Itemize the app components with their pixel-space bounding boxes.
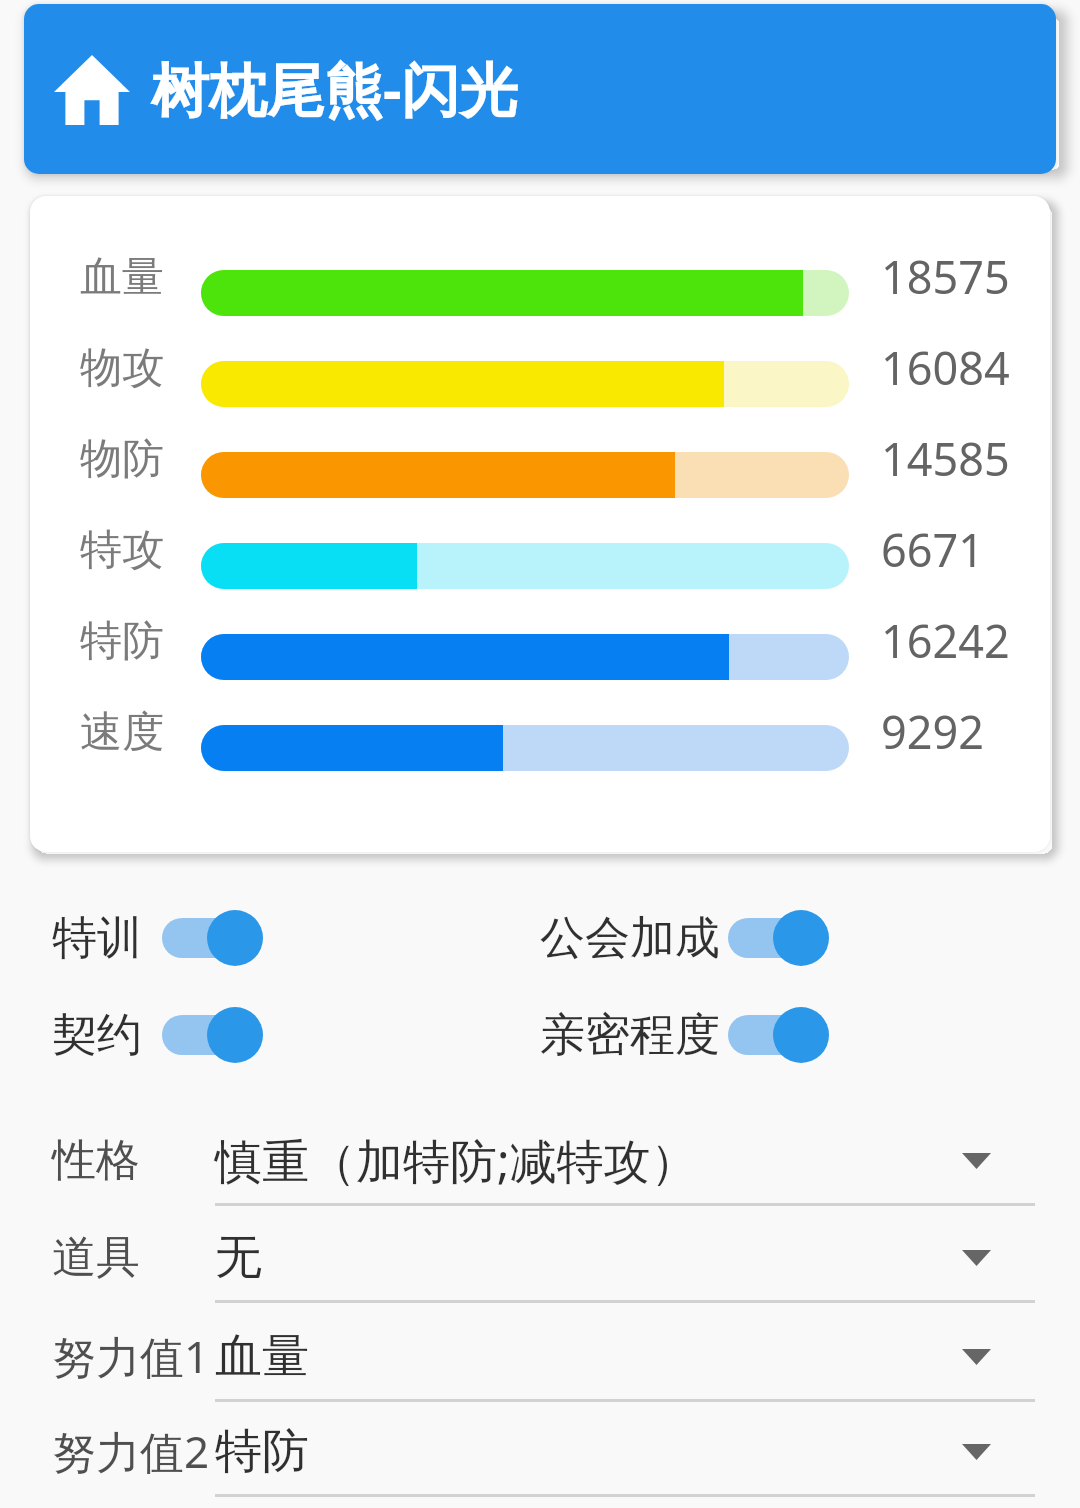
staticText: 亲密程度 [540, 1007, 720, 1064]
staticText: 9292 [881, 701, 984, 762]
staticText: 16242 [881, 610, 1010, 671]
button[interactable] [48, 49, 136, 131]
button[interactable] [162, 910, 263, 966]
button[interactable] [728, 910, 829, 966]
staticText: 树枕尾熊-闪光 [151, 49, 518, 128]
button[interactable]: 性格 [0, 1112, 1080, 1208]
button[interactable] [162, 1007, 263, 1063]
staticText: 血量 [80, 251, 164, 304]
staticText: 14585 [881, 428, 1010, 489]
button[interactable]: 道具 [0, 1209, 1080, 1305]
staticText: 血量 [215, 1327, 309, 1386]
staticText: 契约 [52, 1007, 142, 1064]
staticText: 公会加成 [540, 910, 720, 967]
staticText: 特攻 [80, 524, 164, 577]
staticText: 速度 [80, 706, 164, 759]
staticText: 物攻 [80, 342, 164, 395]
staticText: 慎重（加特防;减特攻） [215, 1128, 698, 1192]
staticText: 努力值1 [52, 1326, 210, 1386]
staticText: 6671 [881, 519, 984, 580]
button[interactable]: 树枕尾熊-闪光 [24, 4, 1056, 174]
staticText: 无 [215, 1228, 262, 1287]
staticText: 特训 [52, 910, 142, 967]
staticText: 性格 [52, 1133, 140, 1188]
staticText: 物防 [80, 433, 164, 486]
staticText: 18575 [881, 246, 1010, 307]
staticText: 努力值2 [52, 1421, 210, 1481]
button[interactable]: 努力值1 [0, 1308, 1080, 1404]
staticText: 16084 [881, 337, 1010, 398]
button[interactable]: 努力值2 [0, 1403, 1080, 1499]
staticText: 特防 [80, 615, 164, 668]
staticText: 特防 [215, 1422, 309, 1481]
button[interactable] [728, 1007, 829, 1063]
staticText: 道具 [52, 1230, 140, 1285]
